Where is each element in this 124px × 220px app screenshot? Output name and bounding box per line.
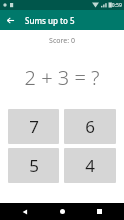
staticText: 6 xyxy=(85,115,95,138)
staticText: 10:59 xyxy=(109,2,122,9)
button[interactable]: 4 xyxy=(64,148,116,183)
staticText: 2 + 3 = ? xyxy=(0,64,124,91)
staticText: Sums up to 5 xyxy=(25,15,75,26)
button[interactable]: 6 xyxy=(64,109,116,144)
button[interactable]: Home xyxy=(50,203,74,220)
staticText: 4 xyxy=(85,154,95,177)
button[interactable]: 5 xyxy=(8,148,59,183)
button[interactable]: Recent apps xyxy=(87,203,111,220)
button[interactable]: Back xyxy=(0,10,20,30)
staticText: 5 xyxy=(29,154,39,177)
button[interactable]: 7 xyxy=(8,109,59,144)
staticText: 7 xyxy=(29,115,39,138)
button[interactable]: Back xyxy=(13,203,37,220)
staticText: Score: 0 xyxy=(0,36,124,46)
